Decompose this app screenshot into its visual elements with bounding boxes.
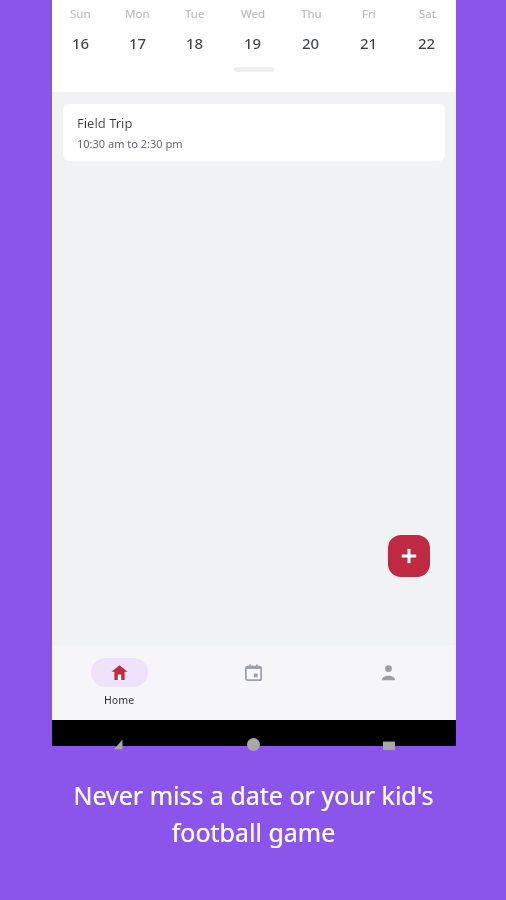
button[interactable]: Field Trip (63, 104, 445, 161)
staticText: 22 (418, 33, 436, 53)
staticText: 19 (244, 33, 262, 53)
staticText: 18 (186, 33, 204, 53)
button[interactable]: Add event (388, 535, 430, 577)
staticText: Mon (125, 6, 150, 22)
button[interactable]: 17 (109, 33, 166, 53)
staticText: Tue (185, 6, 205, 22)
button[interactable]: Calendar (225, 658, 282, 687)
staticText: 16 (72, 33, 90, 53)
staticText: Never miss a date or your kid's football… (73, 778, 434, 849)
button[interactable]: Profile (360, 658, 417, 687)
staticText: 10:30 am to 2:30 pm (77, 136, 183, 151)
staticText: Wed (241, 6, 266, 22)
staticText: 20 (302, 33, 320, 53)
staticText: 17 (129, 33, 147, 53)
staticText: 21 (360, 33, 378, 53)
staticText: Fri (362, 6, 376, 22)
button[interactable]: 18 (166, 33, 224, 53)
staticText: Thu (301, 6, 322, 22)
button[interactable]: Home (91, 658, 148, 707)
button[interactable]: 21 (340, 33, 398, 53)
staticText: Home (104, 693, 135, 707)
button[interactable]: 19 (224, 33, 282, 53)
button[interactable]: 16 (52, 33, 109, 53)
staticText: Sun (70, 6, 91, 22)
button[interactable]: 20 (282, 33, 340, 53)
button[interactable]: 22 (398, 33, 456, 53)
staticText: Field Trip (77, 114, 133, 132)
staticText: Sat (419, 6, 436, 22)
